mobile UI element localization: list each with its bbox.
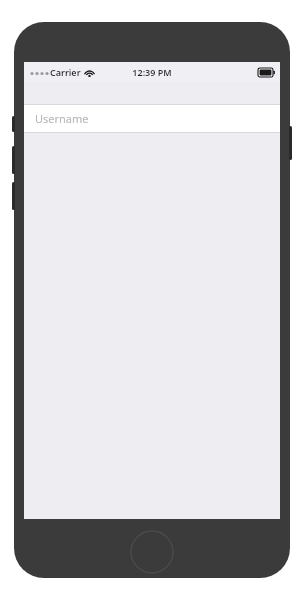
button[interactable]: Home: [130, 530, 174, 574]
staticText: Username: [35, 111, 89, 126]
staticText: Carrier: [50, 66, 81, 78]
staticText: 12:39 PM: [132, 66, 172, 78]
button[interactable]: Username: [24, 104, 280, 133]
